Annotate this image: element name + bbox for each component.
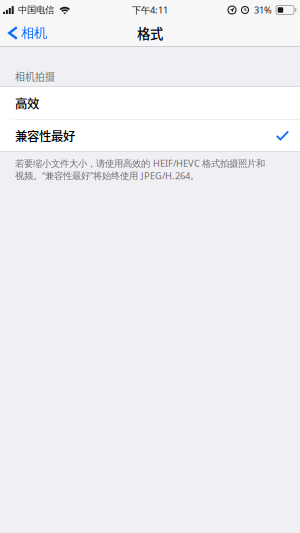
staticText: 相机	[21, 25, 47, 41]
staticText: 格式	[137, 23, 163, 43]
staticText: 中国电信	[18, 4, 54, 16]
button[interactable]: 高效	[0, 87, 300, 119]
staticText: 31%	[254, 4, 272, 16]
button[interactable]: 相机	[0, 20, 55, 46]
staticText: 下午4:11	[132, 4, 168, 16]
staticText: 高效	[15, 94, 39, 112]
button[interactable]: 兼容性最好	[0, 119, 300, 151]
staticText: 若要缩小文件大小，请使用高效的 HEIF/HEVC 格式拍摄照片和视频。“兼容性…	[15, 157, 265, 182]
staticText: 相机拍摄	[15, 69, 55, 83]
staticText: 兼容性最好	[15, 126, 75, 144]
